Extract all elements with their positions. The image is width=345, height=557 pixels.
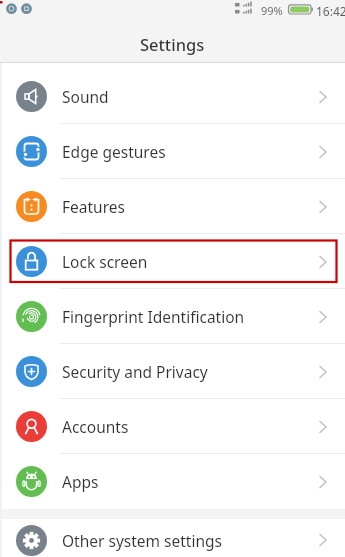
staticText: Apps bbox=[62, 471, 318, 492]
button[interactable]: Fingerprint Identification bbox=[0, 289, 345, 344]
staticText: Other system settings bbox=[62, 530, 318, 551]
button[interactable]: Sound bbox=[0, 69, 345, 124]
staticText: 16:42 bbox=[316, 3, 345, 19]
staticText: Settings bbox=[140, 33, 205, 55]
button[interactable]: Other system settings bbox=[0, 519, 345, 557]
button[interactable]: Security and Privacy bbox=[0, 344, 345, 399]
staticText: 99% bbox=[261, 3, 283, 18]
button[interactable]: Lock screen bbox=[0, 234, 345, 289]
staticText: Edge gestures bbox=[62, 141, 318, 162]
button[interactable]: Accounts bbox=[0, 399, 345, 454]
button[interactable]: Features bbox=[0, 179, 345, 234]
button[interactable]: Edge gestures bbox=[0, 124, 345, 179]
staticText: Fingerprint Identification bbox=[62, 306, 318, 327]
staticText: Sound bbox=[62, 86, 318, 107]
staticText: Security and Privacy bbox=[62, 361, 318, 382]
staticText: Lock screen bbox=[62, 251, 318, 272]
staticText: Accounts bbox=[62, 416, 318, 437]
staticText: Features bbox=[62, 196, 318, 217]
button[interactable]: Apps bbox=[0, 454, 345, 509]
